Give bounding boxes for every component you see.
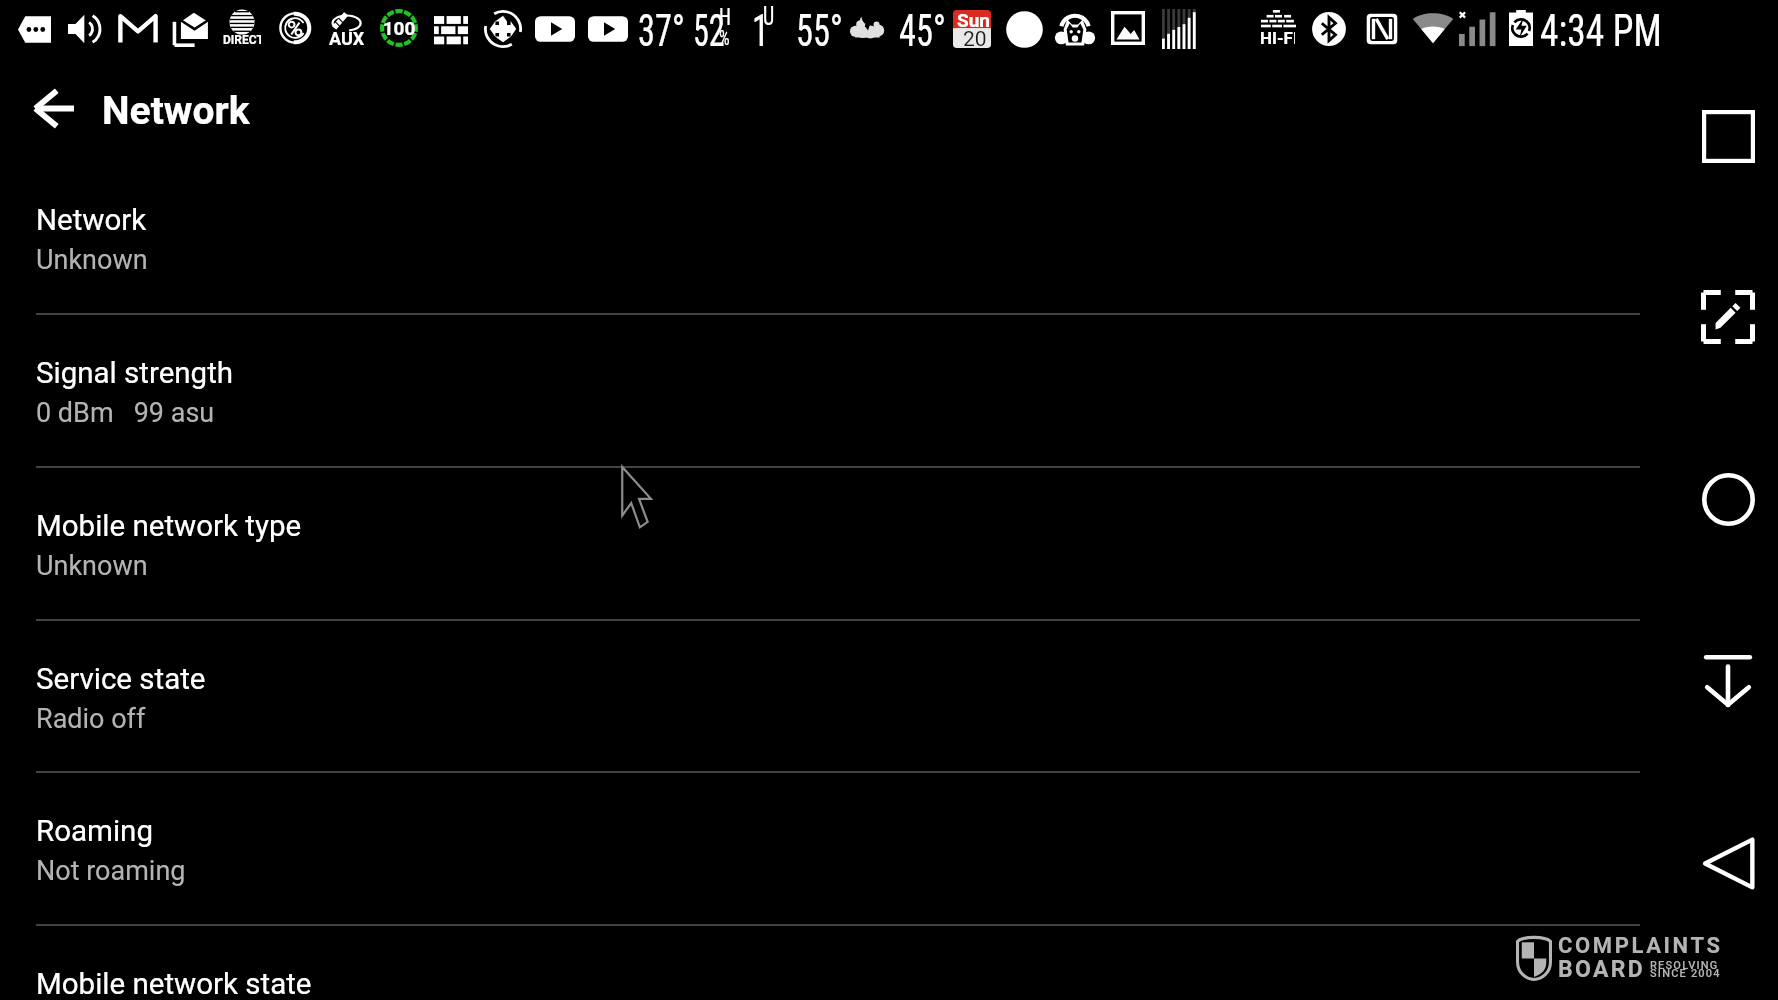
button[interactable]: Home (1683, 454, 1773, 544)
staticText: U (763, 2, 775, 31)
staticText: DIRECTV (223, 33, 261, 47)
staticText: % (719, 26, 730, 51)
staticText: 45° (899, 5, 946, 57)
staticText: Signal strength (36, 356, 234, 391)
staticText: SINCE 2004 (1650, 967, 1778, 980)
staticText: Unknown (36, 244, 148, 276)
staticText: 1 (752, 5, 769, 57)
button[interactable]: Signal strength (0, 313, 1778, 466)
button[interactable]: Roaming (0, 771, 1778, 924)
staticText: Service state (36, 662, 206, 697)
staticText: BOARD (1558, 956, 1778, 983)
staticText: Network (102, 88, 250, 134)
staticText: 37° (638, 5, 685, 57)
staticText: 55° (796, 5, 843, 57)
staticText: Network (36, 203, 147, 238)
button[interactable]: Network (0, 160, 1778, 313)
button[interactable]: Mobile network type (0, 466, 1778, 619)
staticText: RESOLVING (1650, 959, 1778, 972)
button[interactable]: Back (1683, 818, 1773, 908)
staticText: Not roaming (36, 855, 186, 887)
staticText: Sun (957, 9, 995, 31)
staticText: 52 (693, 5, 725, 57)
staticText: 4:34 PM (1540, 5, 1662, 57)
staticText: Unknown (36, 550, 148, 582)
button[interactable]: Pull down notification shade (1683, 636, 1773, 726)
staticText: 0 dBm 99 asu (36, 397, 215, 429)
button[interactable]: Recents (1683, 91, 1773, 181)
staticText: Mobile network state (36, 967, 312, 1000)
staticText: Roaming (36, 814, 153, 849)
staticText: Radio off (36, 703, 146, 735)
staticText: COMPLAINTS (1558, 933, 1778, 959)
button[interactable]: Screenshot and edit (1683, 272, 1773, 362)
staticText: 20 (963, 27, 1001, 52)
button[interactable]: Service state (0, 619, 1778, 771)
staticText: HI-FI (1260, 28, 1295, 48)
staticText: 100 (380, 17, 418, 39)
staticText: H (719, 3, 731, 31)
button[interactable]: Back (0, 52, 106, 156)
staticText: AUX (329, 28, 365, 49)
button[interactable]: Mobile network state (0, 924, 1778, 1000)
staticText: Mobile network type (36, 509, 302, 544)
